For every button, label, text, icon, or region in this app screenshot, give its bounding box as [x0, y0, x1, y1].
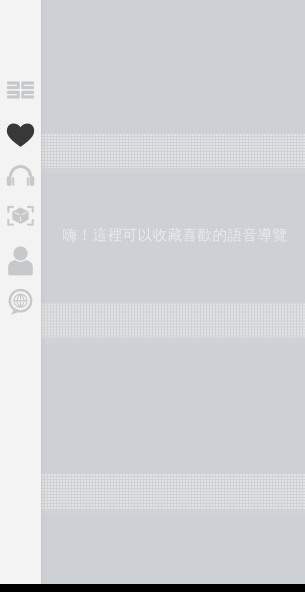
staticText: 嗨！這裡可以收藏喜歡的語音導覽 — [62, 226, 287, 244]
button[interactable]: Scan — [0, 195, 41, 236]
button[interactable]: Audio guide — [0, 155, 41, 196]
button[interactable]: Profile — [0, 240, 41, 281]
button[interactable]: Favorites — [0, 115, 41, 156]
button[interactable]: Language — [0, 281, 41, 322]
button[interactable]: Home — [0, 69, 41, 110]
